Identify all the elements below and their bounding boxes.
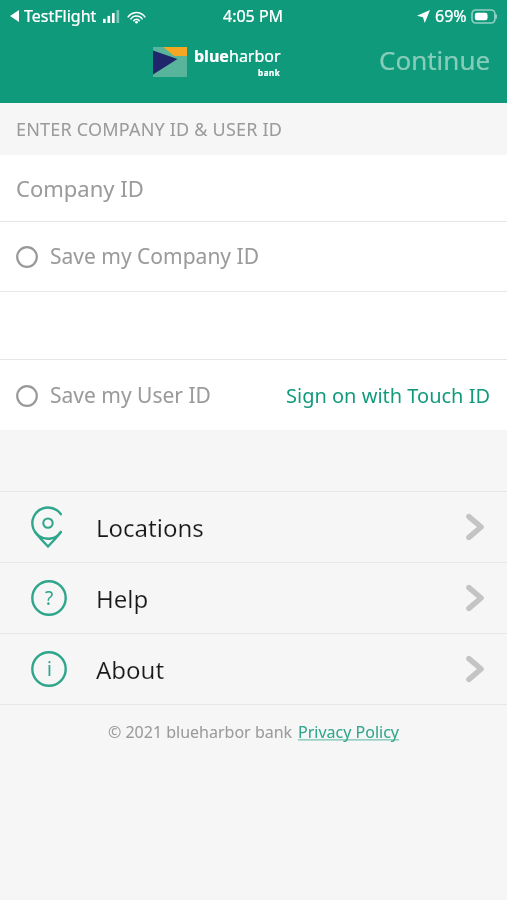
other: Open About — [467, 656, 483, 682]
button[interactable]: Locations — [0, 492, 507, 562]
button[interactable]: Company ID — [0, 155, 507, 221]
button[interactable]: ? — [0, 563, 507, 633]
staticText: TestFlight — [24, 5, 97, 27]
button[interactable]: Continue — [367, 38, 503, 81]
staticText: Privacy Policy — [298, 721, 399, 743]
staticText: About — [96, 653, 165, 686]
staticText: Help — [96, 582, 149, 615]
staticText: 4:05 PM — [223, 5, 284, 27]
staticText: © 2021 blueharbor bank — [108, 721, 297, 743]
staticText: bank — [258, 67, 281, 78]
button[interactable]: Save my User ID — [0, 371, 223, 420]
staticText: harbor — [229, 45, 281, 67]
staticText: 69% — [435, 5, 467, 27]
button[interactable]: i — [0, 634, 507, 704]
button[interactable]: Sign on with Touch ID — [274, 372, 507, 419]
staticText: i — [47, 656, 52, 682]
staticText: ENTER COMPANY ID & USER ID — [16, 117, 283, 142]
button[interactable]: Save my Company ID — [0, 232, 275, 281]
staticText: Save my Company ID — [50, 242, 259, 271]
staticText: Continue — [379, 42, 491, 77]
other: Open Help — [467, 585, 483, 611]
staticText: blue — [194, 45, 229, 67]
staticText: Locations — [96, 511, 204, 544]
staticText: Save my User ID — [50, 381, 211, 410]
staticText: Sign on with Touch ID — [286, 382, 491, 409]
staticText: Company ID — [16, 173, 144, 203]
staticText: ? — [45, 585, 54, 611]
other: Locations — [31, 506, 65, 548]
button[interactable]: Privacy Policy — [297, 719, 400, 745]
other: Open Locations — [467, 514, 483, 540]
